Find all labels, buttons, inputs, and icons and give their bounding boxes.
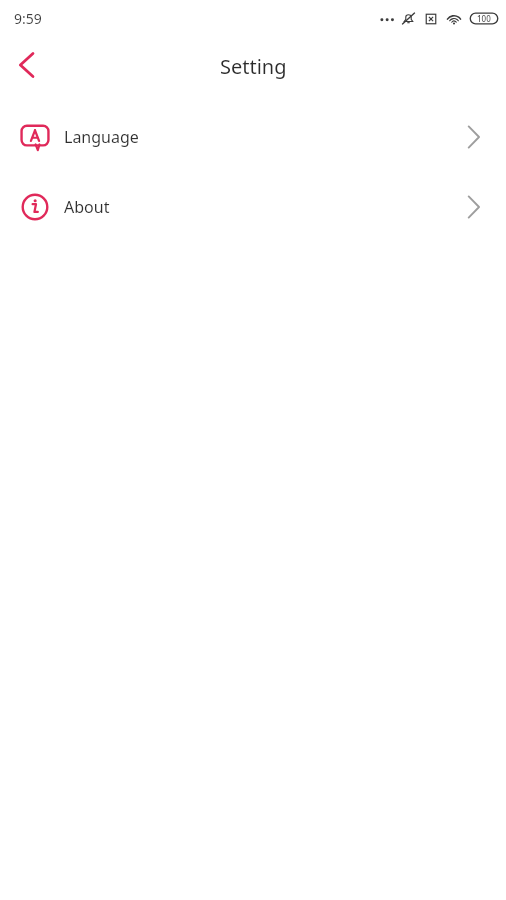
button[interactable]: Back [0, 39, 52, 91]
button[interactable]: About [0, 183, 506, 231]
staticText: Setting [220, 53, 287, 80]
staticText: 9:59 [14, 9, 42, 28]
button[interactable]: Language [0, 113, 506, 161]
staticText: About [64, 196, 110, 218]
staticText: 100 [477, 13, 491, 24]
staticText: Language [64, 126, 139, 148]
